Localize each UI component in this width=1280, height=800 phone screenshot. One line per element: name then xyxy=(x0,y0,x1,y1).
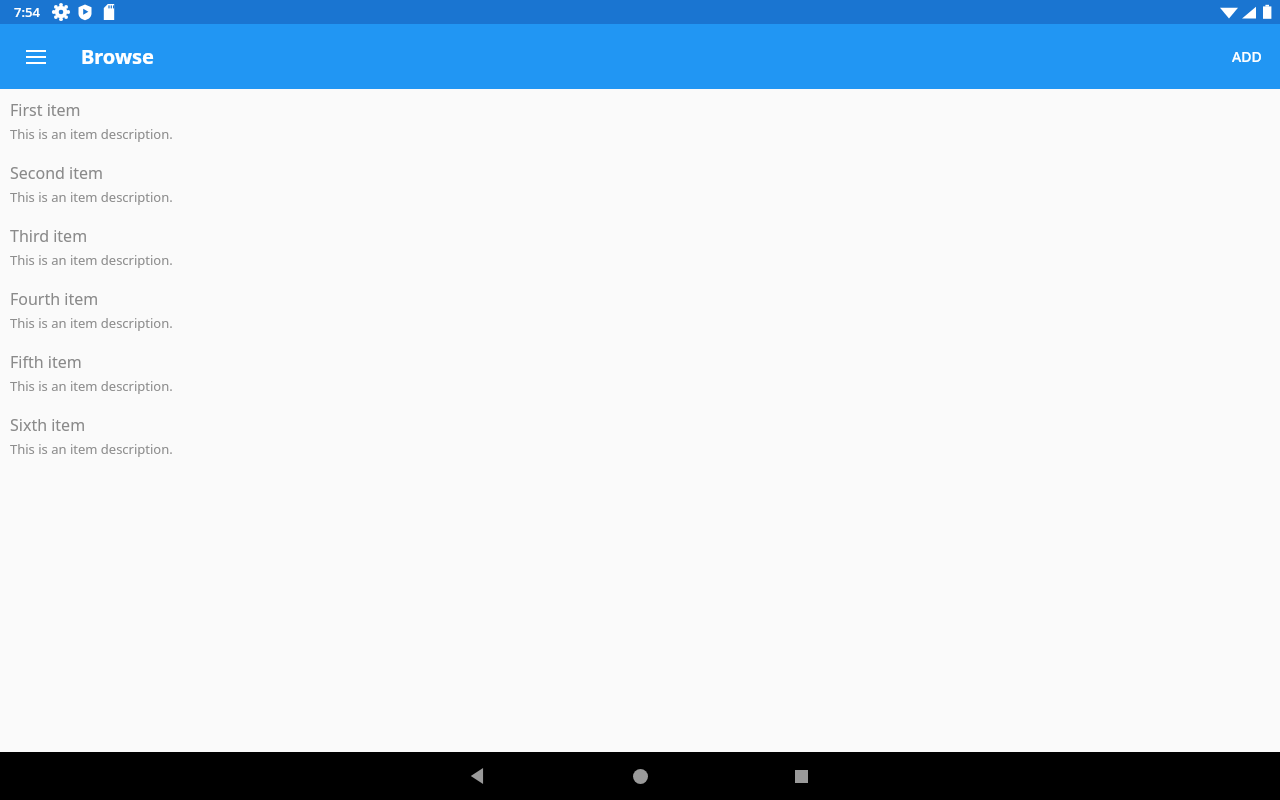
button[interactable]: Home xyxy=(616,752,664,800)
staticText: This is an item description. xyxy=(10,188,173,206)
button[interactable]: Second item xyxy=(0,162,1280,225)
staticText: Fifth item xyxy=(10,351,82,373)
staticText: ADD xyxy=(1232,47,1262,66)
staticText: This is an item description. xyxy=(10,125,173,143)
button[interactable]: ADD xyxy=(1214,33,1280,80)
staticText: 7:54 xyxy=(14,3,40,21)
button[interactable]: First item xyxy=(0,99,1280,162)
staticText: This is an item description. xyxy=(10,314,173,332)
button[interactable]: Fifth item xyxy=(0,351,1280,414)
staticText: This is an item description. xyxy=(10,440,173,458)
button[interactable]: Sixth item xyxy=(0,414,1280,477)
staticText: Second item xyxy=(10,162,103,184)
staticText: Sixth item xyxy=(10,414,86,436)
staticText: This is an item description. xyxy=(10,251,173,269)
button[interactable]: Back xyxy=(454,752,502,800)
button[interactable]: Recent apps xyxy=(777,752,825,800)
button[interactable]: Third item xyxy=(0,225,1280,288)
button[interactable]: Fourth item xyxy=(0,288,1280,351)
staticText: Browse xyxy=(81,43,155,70)
staticText: First item xyxy=(10,99,81,121)
staticText: This is an item description. xyxy=(10,377,173,395)
staticText: Fourth item xyxy=(10,288,99,310)
staticText: Third item xyxy=(10,225,88,247)
button[interactable]: Open navigation menu xyxy=(12,33,60,81)
